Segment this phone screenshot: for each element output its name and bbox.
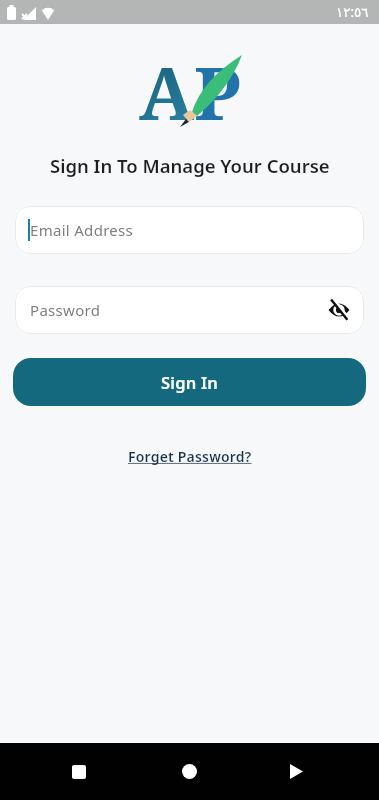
staticText: Password [30, 300, 101, 320]
staticText: Sign In [161, 371, 218, 393]
button[interactable]: Email Address [15, 206, 364, 254]
button[interactable] [290, 764, 303, 779]
button[interactable]: Password [15, 286, 364, 334]
button[interactable] [72, 765, 86, 779]
staticText: ١٢:٥٦ [336, 3, 369, 21]
staticText: Email Address [30, 220, 134, 240]
staticText: A [139, 42, 194, 130]
staticText: Sign In To Manage Your Course [50, 153, 330, 178]
button[interactable]: Sign In [13, 358, 366, 406]
staticText: P [194, 42, 241, 130]
button[interactable]: Forget Password? [128, 447, 252, 466]
button[interactable] [182, 764, 197, 779]
